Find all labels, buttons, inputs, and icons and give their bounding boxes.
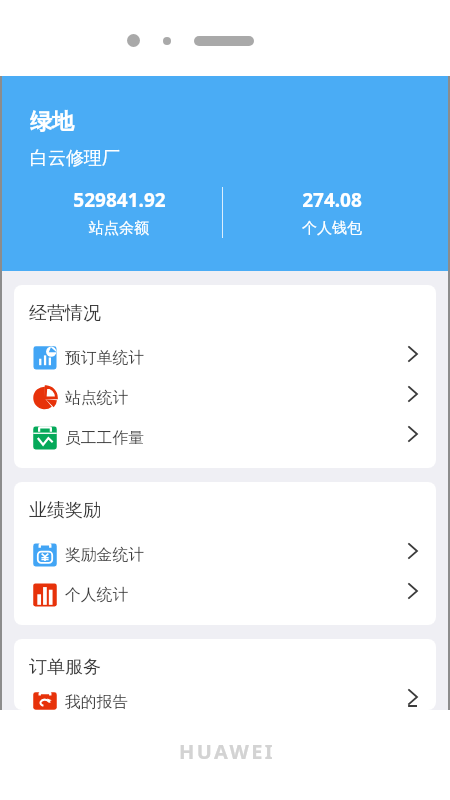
button[interactable]: 我的报告 (14, 692, 436, 710)
staticText: 订单服务 (29, 656, 101, 679)
staticText: 经营情况 (29, 302, 101, 325)
staticText: 529841.92 (73, 187, 166, 213)
staticText: 预订单统计 (65, 348, 144, 368)
staticText: 白云修理厂 (30, 147, 120, 170)
staticText: 站点统计 (65, 388, 129, 408)
staticText: 个人钱包 (302, 219, 362, 238)
button[interactable]: 个人统计 (14, 575, 436, 615)
staticText: 业绩奖励 (29, 499, 101, 522)
staticText: 我的报告 (65, 692, 129, 710)
staticText: 站点余额 (89, 219, 149, 238)
button[interactable]: 274.08 (223, 187, 440, 238)
staticText: 绿地 (30, 108, 74, 136)
button[interactable]: 预订单统计 (14, 338, 436, 378)
staticText: 个人统计 (65, 585, 129, 605)
button[interactable]: 奖励金统计 (14, 535, 436, 575)
staticText: 274.08 (302, 187, 362, 213)
button[interactable]: 529841.92 (16, 187, 222, 238)
staticText: HUAWEI (179, 738, 275, 765)
button[interactable]: 站点统计 (14, 378, 436, 418)
staticText: 奖励金统计 (65, 545, 144, 565)
button[interactable]: 员工工作量 (14, 418, 436, 458)
staticText: 员工工作量 (65, 428, 144, 448)
